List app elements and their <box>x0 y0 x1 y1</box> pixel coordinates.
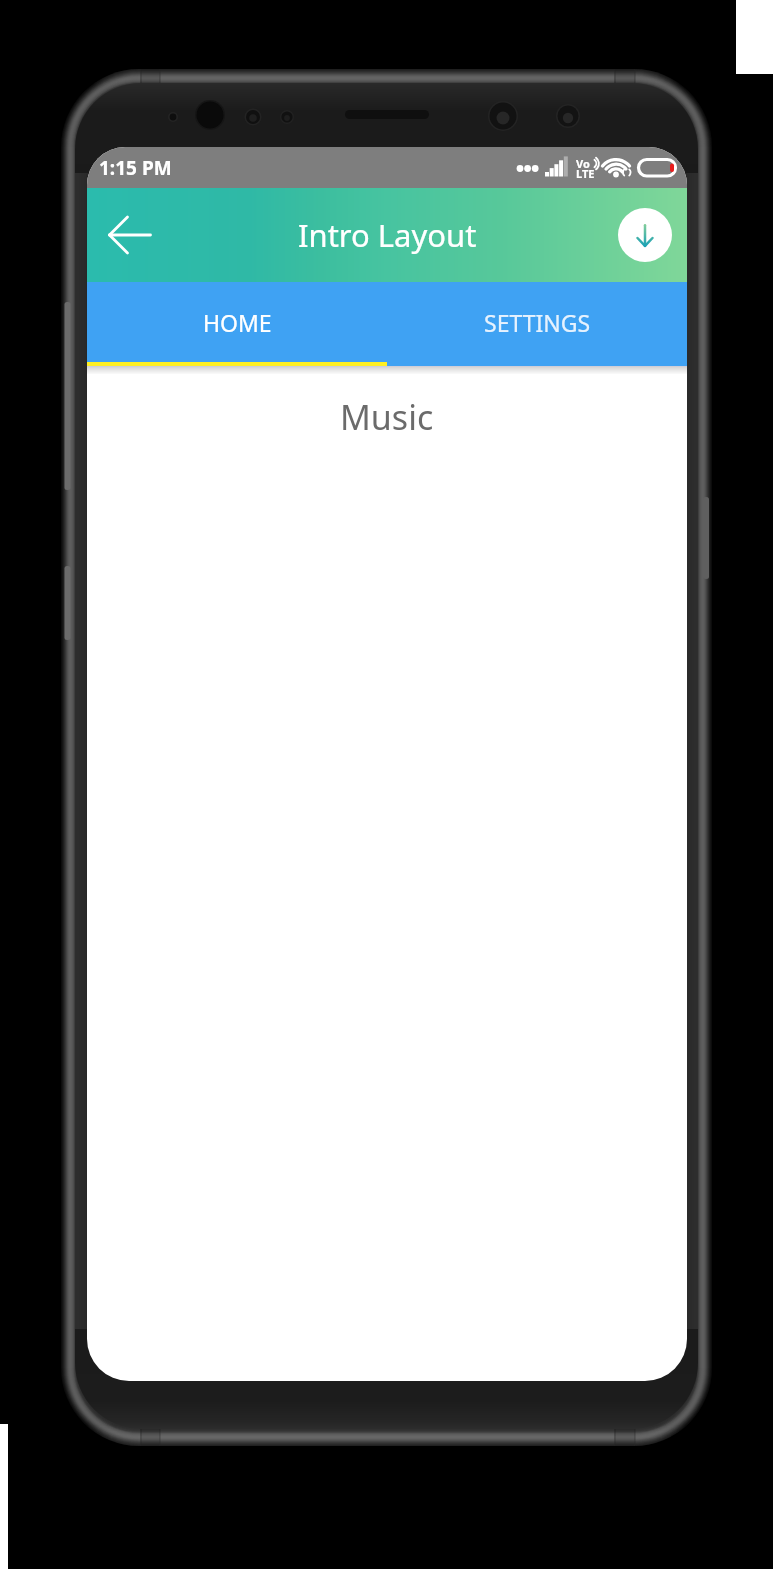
staticText: 1:15 PM <box>99 155 172 181</box>
button[interactable]: SETTINGS <box>387 282 687 366</box>
staticText: HOME <box>203 307 272 338</box>
staticText: LTE <box>576 166 595 181</box>
button[interactable]: Back <box>102 207 158 263</box>
staticText: Intro Layout <box>298 214 477 256</box>
staticText: Vo <box>576 156 590 171</box>
button[interactable]: HOME <box>87 282 387 366</box>
staticText: Music <box>340 394 434 440</box>
staticText: SETTINGS <box>484 307 591 338</box>
button[interactable]: Download <box>618 208 672 262</box>
